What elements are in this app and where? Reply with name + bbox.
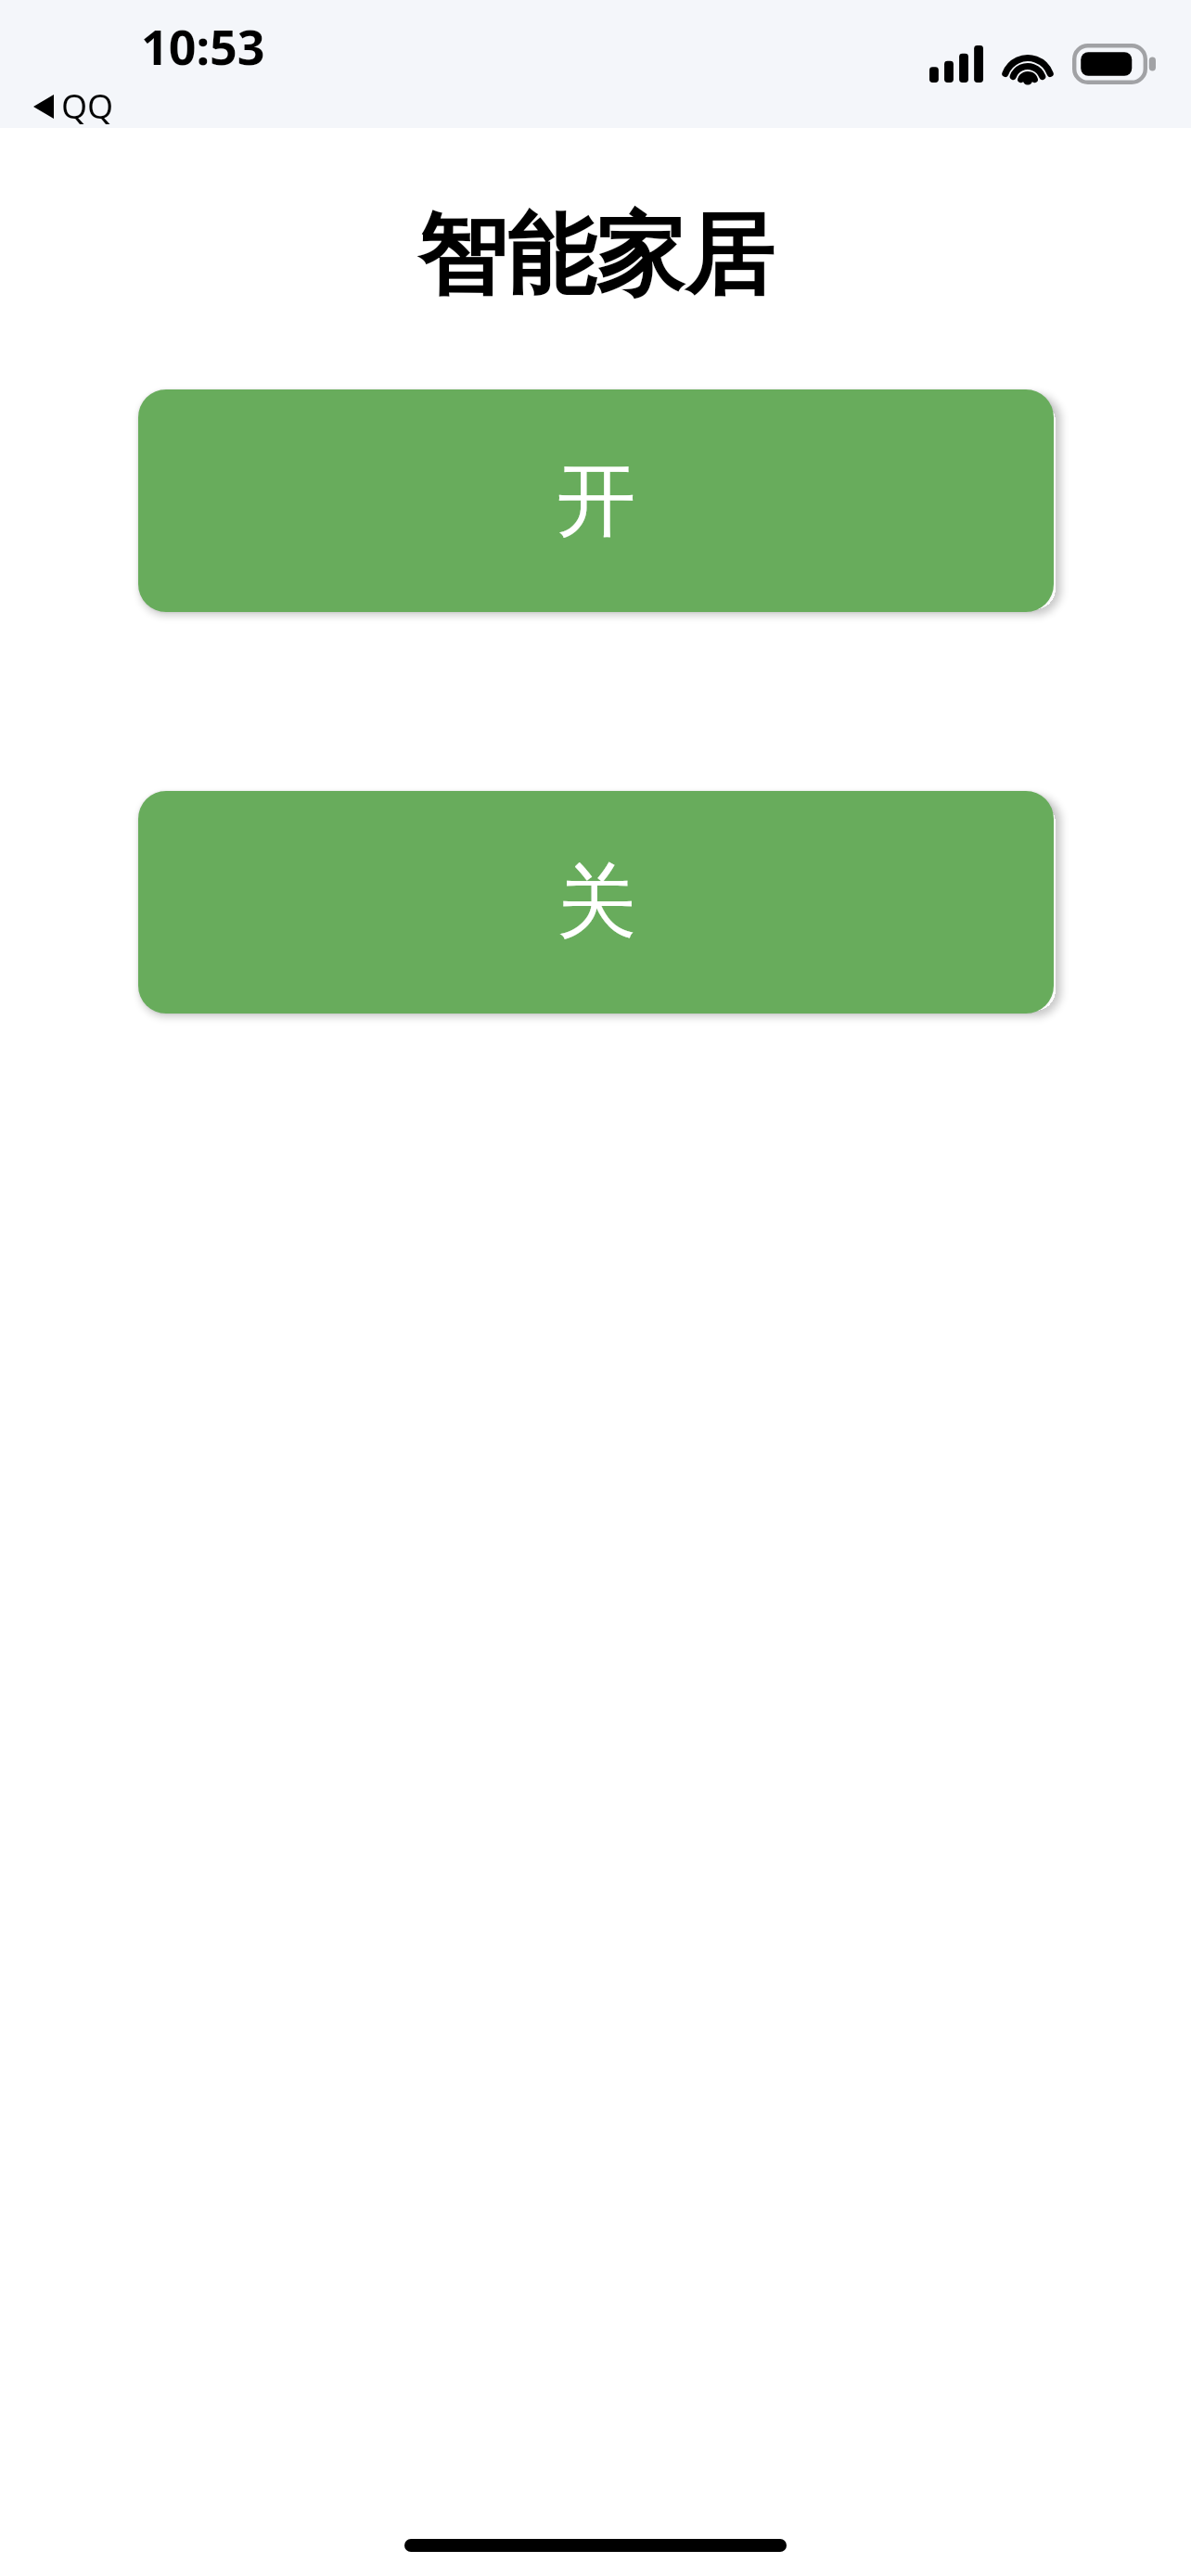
staticText: QQ — [61, 83, 114, 129]
staticText: 10:53 — [141, 13, 265, 79]
staticText: 关 — [557, 852, 636, 952]
staticText: 智能家居 — [417, 200, 774, 312]
button[interactable]: Back to QQ — [28, 82, 120, 131]
button[interactable]: 开 — [138, 389, 1054, 612]
staticText: 开 — [557, 451, 636, 551]
button[interactable]: 关 — [138, 791, 1054, 1014]
